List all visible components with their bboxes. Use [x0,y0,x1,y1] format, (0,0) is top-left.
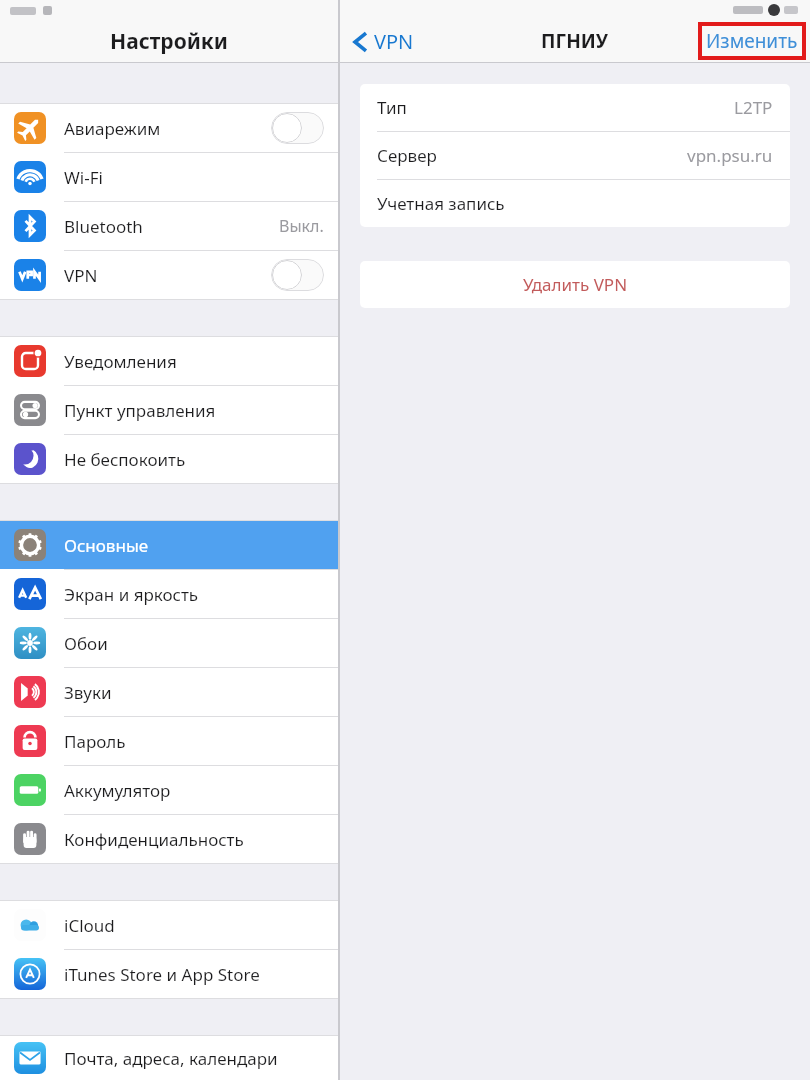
staticText: Учетная запись [377,192,505,215]
staticText: Настройки [110,27,228,56]
button[interactable]: Авиарежим [0,104,338,152]
staticText: ПГНИУ [541,28,609,54]
button[interactable]: Изменить [702,26,802,56]
button[interactable]: iTunes Store и App Store [0,950,338,998]
staticText: Wi-Fi [64,166,103,189]
button[interactable]: Пароль [0,717,338,765]
button[interactable]: Не беспокоить [0,435,338,483]
staticText: iTunes Store и App Store [64,963,260,986]
staticText: Экран и яркость [64,583,199,606]
staticText: Не беспокоить [64,448,186,471]
staticText: L2TP [734,96,773,119]
button[interactable]: Wi-Fi [0,153,338,201]
staticText: iCloud [64,914,115,937]
staticText: Bluetooth [64,215,143,238]
button[interactable]: Экран и яркость [0,570,338,618]
button[interactable]: Конфиденциальность [0,815,338,863]
staticText: Конфиденциальность [64,828,244,851]
staticText: Уведомления [64,350,177,373]
staticText: Авиарежим [64,117,161,140]
button[interactable]: Аккумулятор [0,766,338,814]
staticText: Основные [64,534,149,557]
button[interactable]: Учетная запись [360,180,790,227]
staticText: Сервер [377,144,437,167]
button[interactable]: Почта, адреса, календари [0,1036,338,1080]
staticText: Изменить [706,28,798,54]
staticText: Почта, адреса, календари [64,1047,278,1070]
staticText: Пароль [64,730,126,753]
staticText: vpn.psu.ru [687,144,773,167]
staticText: Удалить VPN [523,273,628,296]
button[interactable]: Пункт управления [0,386,338,434]
staticText: VPN [64,264,98,287]
button[interactable]: Обои [0,619,338,667]
staticText: Тип [377,96,407,119]
staticText: Аккумулятор [64,779,171,802]
button[interactable]: Тип [360,84,790,131]
staticText: Обои [64,632,108,655]
staticText: VPN [374,28,414,55]
button[interactable]: iCloud [0,901,338,949]
button[interactable]: Bluetooth [0,202,338,250]
button[interactable]: Уведомления [0,337,338,385]
button[interactable]: VPN [340,22,428,61]
staticText: Звуки [64,681,112,704]
button[interactable]: Звуки [0,668,338,716]
button[interactable]: VPN [0,251,338,299]
button[interactable]: Сервер [360,132,790,179]
button[interactable]: Основные [0,521,338,569]
staticText: Пункт управления [64,399,216,422]
button[interactable]: Удалить VPN [360,261,790,308]
staticText: Выкл. [279,215,324,237]
